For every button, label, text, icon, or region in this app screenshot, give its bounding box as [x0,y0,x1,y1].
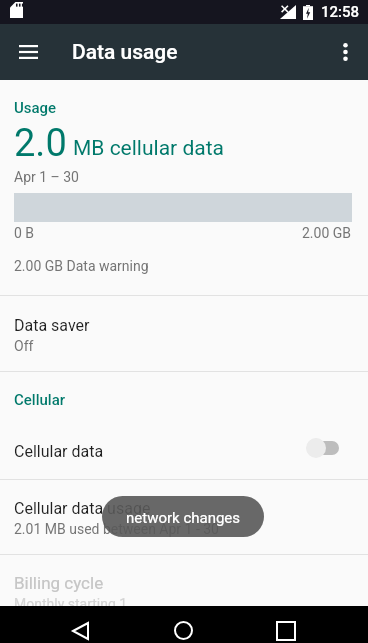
button[interactable]: More options [312,24,368,80]
staticText: Usage [14,99,57,117]
staticText: 0 B [14,225,35,241]
staticText: MB cellular data [73,136,224,161]
staticText: Data saver [14,316,90,335]
staticText: network changes [126,509,241,527]
staticText: 2.0 [14,121,67,166]
button[interactable]: Cellular data usage [0,480,368,554]
staticText: 2.01 MB used between Apr 1 - 30 [14,521,219,537]
staticText: Cellular data [14,442,104,461]
staticText: Billing cycle [14,573,104,593]
button[interactable]: Home [151,606,216,643]
button[interactable]: Recent apps [253,606,318,643]
button[interactable]: Cellular data [0,421,368,479]
staticText: Cellular data usage [14,499,151,518]
staticText: 2.00 GB Data warning [14,258,149,274]
staticText: Monthly starting 1 [14,596,128,606]
staticText: 12:58 [321,3,360,21]
staticText: Data usage [72,40,178,65]
staticText: Cellular [14,391,66,409]
staticText: Apr 1 – 30 [14,169,79,185]
button[interactable]: Open navigation menu [0,24,56,80]
button[interactable]: Billing cycle [0,555,368,606]
button[interactable]: Back [48,606,113,643]
staticText: Off [14,338,34,354]
button[interactable]: Data saver [0,296,368,371]
staticText: 2.00 GB [302,225,352,241]
